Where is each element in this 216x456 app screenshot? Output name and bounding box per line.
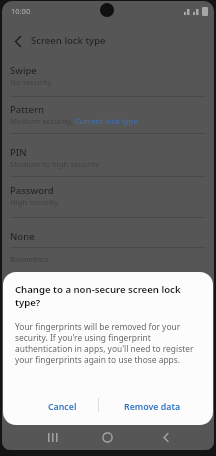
- button[interactable]: Remove data: [98, 392, 207, 422]
- staticText: Your fingerprints will be removed for yo…: [15, 321, 194, 365]
- staticText: Password: [10, 184, 54, 197]
- button[interactable]: Pattern: [2, 95, 214, 131]
- staticText: None: [10, 230, 35, 243]
- staticText: Pattern: [10, 103, 44, 116]
- button[interactable]: Cancel: [3, 392, 121, 422]
- staticText: Medium security, Current lock type: [10, 116, 138, 127]
- staticText: 10:00: [11, 6, 31, 16]
- staticText: Biometrics: [10, 254, 49, 264]
- staticText: Swipe: [10, 64, 37, 77]
- staticText: Cancel: [48, 401, 77, 413]
- button[interactable]: [2, 426, 72, 450]
- staticText: Screen lock type: [31, 34, 106, 47]
- button[interactable]: PIN: [2, 138, 214, 174]
- button[interactable]: Swipe: [2, 56, 214, 92]
- button[interactable]: [72, 426, 143, 450]
- staticText: No security: [10, 77, 52, 88]
- staticText: Remove data: [124, 401, 181, 413]
- staticText: PIN: [10, 146, 27, 159]
- button[interactable]: Screen lock type: [2, 27, 214, 55]
- staticText: Change to a non-secure screen lock type?: [15, 283, 181, 309]
- button[interactable]: [143, 426, 214, 450]
- staticText: High security: [10, 197, 59, 208]
- button[interactable]: None: [2, 222, 214, 248]
- button[interactable]: Password: [2, 176, 214, 212]
- staticText: Medium to high security: [10, 159, 100, 170]
